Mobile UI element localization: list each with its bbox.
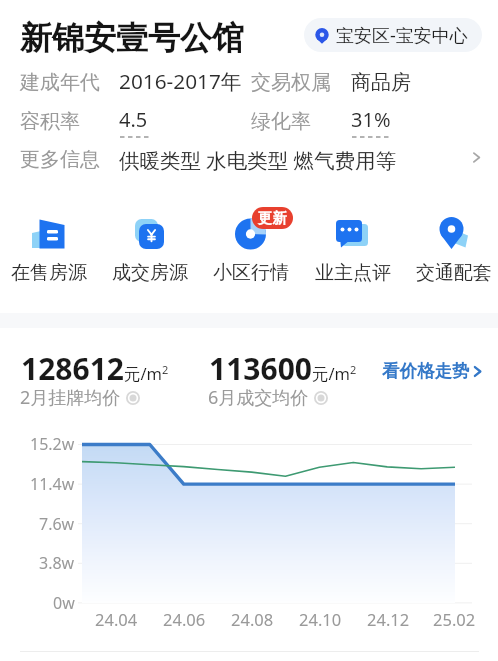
staticText: 24.04 [95,608,138,630]
staticText: 11.4w [30,473,75,495]
staticText: 供暖类型 水电类型 燃气费用等 [119,146,397,174]
staticText: 6月成交均价 [208,385,309,410]
staticText: 0w [53,592,75,614]
button[interactable]: 小区行情 [202,216,299,285]
button[interactable]: 业主点评 [304,216,401,285]
staticText: 113600元/m2 [209,348,357,389]
staticText: 24.10 [299,608,342,630]
staticText: 容积率 [20,109,80,134]
staticText: 看价格走势 [382,360,470,382]
other: Location [314,28,330,44]
staticText: 24.12 [367,608,410,630]
staticText: 宝安区-宝安中心 [336,23,468,48]
staticText: 3.8w [39,552,75,574]
staticText: 新锦安壹号公馆 [20,18,244,58]
staticText: 商品房 [351,70,411,95]
button[interactable]: Location [304,18,482,52]
staticText: 小区行情 [213,261,289,285]
staticText: 25.02 [433,608,476,630]
staticText: 绿化率 [251,109,311,134]
staticText: 128612元/m2 [21,348,169,389]
staticText: 交易权属 [251,70,331,95]
button[interactable]: 更多信息 [0,139,498,177]
staticText: 2016-2017年 [119,67,242,95]
staticText: 7.6w [39,513,75,535]
button[interactable]: 成交房源 [101,216,198,285]
staticText: 更新 [258,209,287,227]
staticText: 交通配套 [416,261,492,285]
staticText: 业主点评 [315,261,391,285]
staticText: 31% [351,106,391,133]
staticText: 在售房源 [11,261,87,285]
staticText: 成交房源 [112,261,188,285]
button[interactable]: 在售房源 [0,216,97,285]
staticText: 更多信息 [20,147,100,172]
staticText: 4.5 [119,106,148,133]
button[interactable]: 看价格走势 [381,358,485,384]
button[interactable]: 交通配套 [405,216,498,285]
staticText: 15.2w [30,433,75,455]
staticText: 24.06 [163,608,206,630]
staticText: 2月挂牌均价 [20,385,121,410]
staticText: 24.08 [231,608,274,630]
staticText: 建成年代 [20,70,100,95]
